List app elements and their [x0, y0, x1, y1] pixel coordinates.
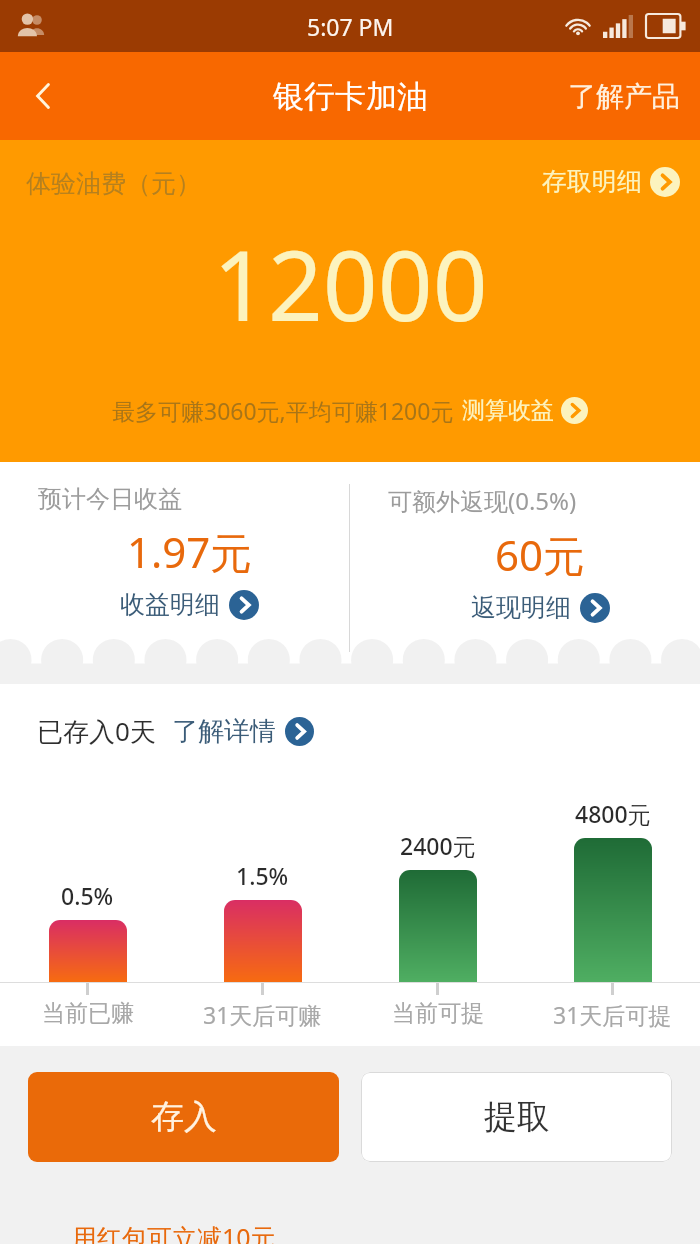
staticText: 银行卡加油 — [273, 77, 428, 116]
staticText: 0.5% — [61, 880, 114, 911]
staticText: 已存入0天 — [37, 713, 156, 749]
staticText: 预计今日收益 — [38, 484, 182, 514]
staticText: 1.97元 — [127, 523, 253, 580]
button[interactable]: 最多可赚3060元,平均可赚1200元 — [108, 391, 592, 430]
staticText: 测算收益 — [462, 396, 554, 425]
staticText: 可额外返现(0.5%) — [388, 484, 577, 517]
button[interactable]: 收益明细 — [117, 586, 262, 623]
button[interactable]: 已存入0天 — [34, 710, 317, 752]
staticText: 2400元 — [400, 830, 476, 861]
staticText: 存取明细 — [542, 166, 642, 197]
staticText: 31天后可赚 — [203, 999, 322, 1030]
staticText: 最多可赚3060元,平均可赚1200元 — [112, 395, 454, 426]
button[interactable]: 存入 — [28, 1072, 339, 1162]
staticText: 31天后可提 — [553, 999, 672, 1030]
button[interactable]: 提取 — [361, 1072, 672, 1162]
staticText: 4800元 — [575, 798, 651, 829]
staticText: 返现明细 — [471, 592, 571, 623]
staticText: 了解详情 — [172, 715, 276, 748]
staticText: 12000 — [213, 218, 488, 349]
staticText: 当前已赚 — [42, 999, 134, 1028]
button[interactable]: 返现明细 — [468, 589, 613, 626]
staticText: 5:07 PM — [307, 11, 394, 42]
staticText: 收益明细 — [120, 589, 220, 620]
staticText: 60元 — [495, 526, 586, 583]
button[interactable]: Back — [0, 52, 86, 140]
staticText: 存入 — [151, 1096, 217, 1138]
staticText: 当前可提 — [392, 999, 484, 1028]
staticText: 1.5% — [236, 860, 289, 891]
staticText: 体验油费（元） — [26, 168, 201, 199]
staticText: 了解产品 — [568, 79, 680, 114]
staticText: 提取 — [484, 1096, 550, 1138]
staticText: 用红包可立减10元 — [72, 1220, 276, 1244]
button[interactable]: 了解产品 — [548, 52, 700, 140]
button[interactable]: 存取明细 — [538, 162, 684, 201]
